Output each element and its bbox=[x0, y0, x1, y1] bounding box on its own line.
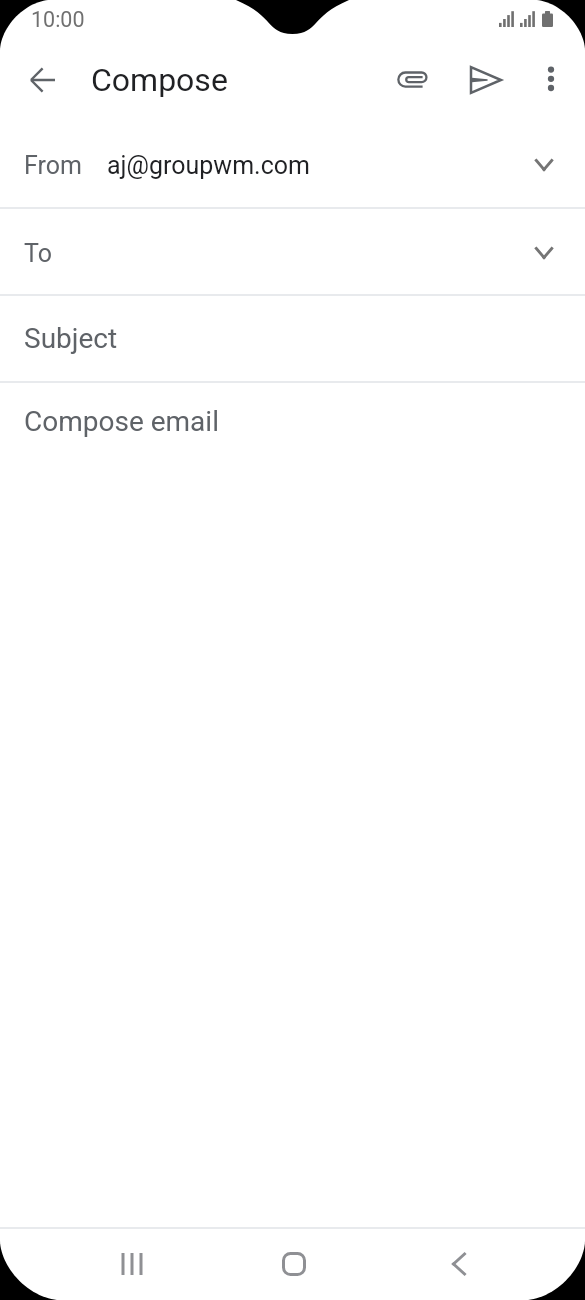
staticText: Compose bbox=[91, 61, 228, 99]
staticText: aj@groupwm.com bbox=[107, 151, 310, 180]
staticText: To bbox=[24, 239, 52, 268]
staticText: 10:00 bbox=[31, 7, 85, 32]
button[interactable]: Attach file bbox=[385, 52, 441, 108]
staticText: Subject bbox=[24, 322, 118, 355]
button[interactable]: Subject bbox=[0, 296, 585, 381]
button[interactable]: To bbox=[0, 209, 585, 294]
button[interactable]: More options bbox=[523, 52, 579, 108]
button[interactable]: Show recipients bbox=[521, 142, 567, 188]
button[interactable]: Recent apps bbox=[50, 1229, 213, 1298]
button[interactable]: From bbox=[0, 120, 585, 207]
button[interactable]: Show recipients bbox=[521, 230, 567, 276]
button[interactable]: Back bbox=[375, 1229, 537, 1298]
button[interactable]: Compose email bbox=[0, 383, 585, 983]
staticText: From bbox=[24, 151, 82, 180]
staticText: Compose email bbox=[24, 405, 219, 438]
button[interactable]: Home bbox=[213, 1229, 375, 1298]
button[interactable]: Navigate up bbox=[15, 52, 71, 108]
button[interactable]: Send bbox=[458, 52, 514, 108]
